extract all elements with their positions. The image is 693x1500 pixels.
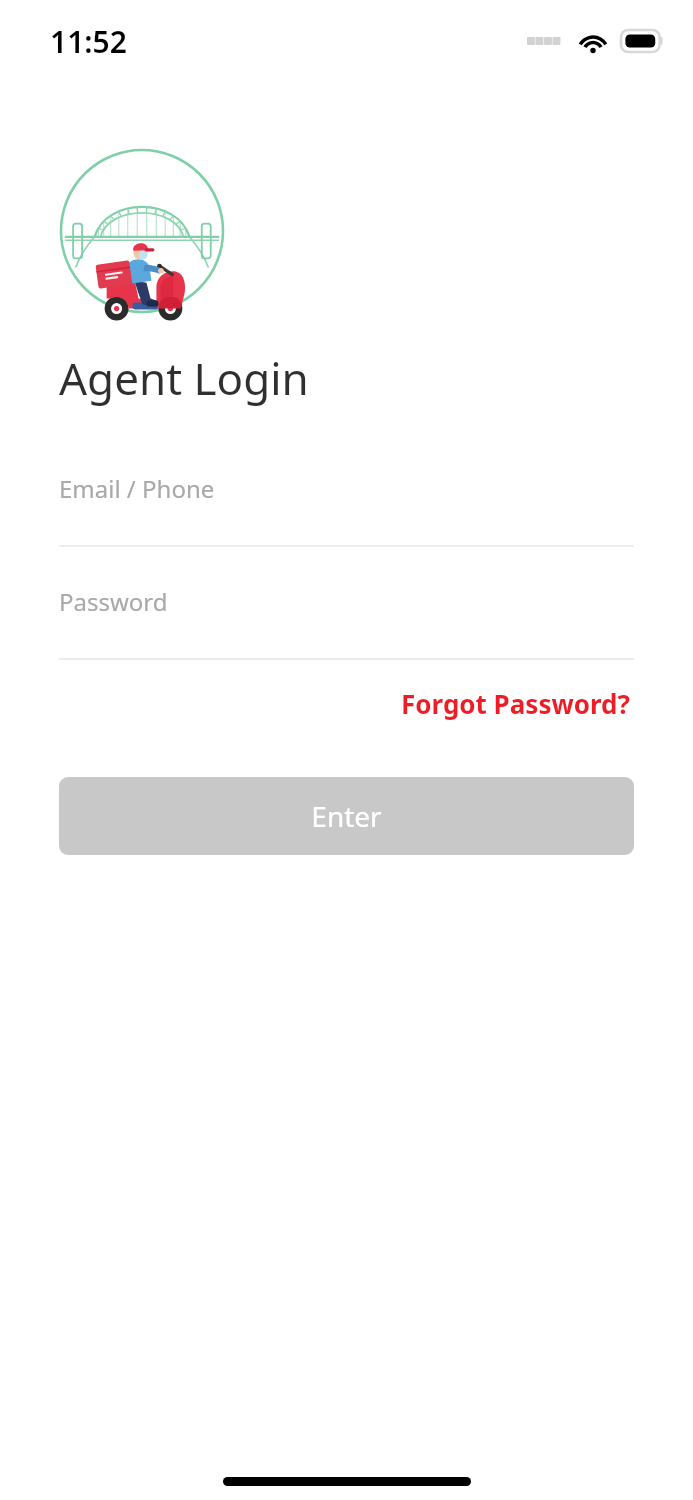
staticText: Email / Phone [59, 472, 215, 505]
staticText: 11:52 [50, 21, 127, 62]
button[interactable]: Enter [59, 777, 634, 855]
button[interactable]: Email / Phone [59, 470, 634, 545]
staticText: Forgot Password? [401, 686, 630, 721]
button[interactable]: Forgot Password? [397, 680, 634, 727]
button[interactable]: Password [59, 583, 634, 658]
staticText: Agent Login [59, 348, 309, 408]
other: App logo [59, 148, 225, 314]
staticText: Password [59, 585, 168, 618]
staticText: Enter [311, 797, 382, 835]
